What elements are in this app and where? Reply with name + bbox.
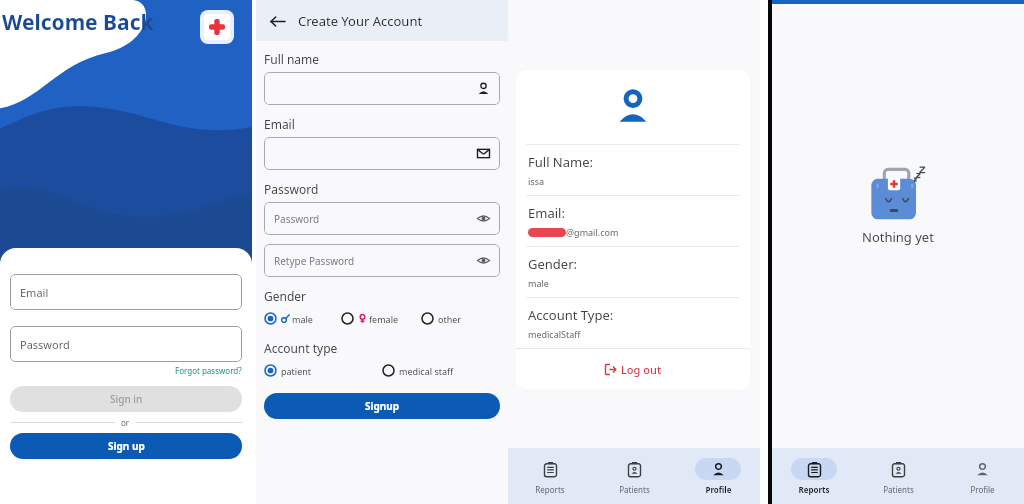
other: Reports	[807, 462, 822, 477]
other: Show password	[477, 212, 490, 225]
staticText: @gmail.com	[566, 226, 619, 238]
button[interactable]: Name	[264, 72, 500, 105]
button[interactable]: Email	[10, 274, 242, 310]
button[interactable]: Email	[264, 137, 500, 170]
staticText: male	[292, 313, 313, 325]
other: Email	[477, 147, 490, 160]
staticText: Gender	[264, 288, 307, 304]
button[interactable]: male	[264, 310, 313, 327]
button[interactable]: Signup	[264, 393, 500, 419]
staticText: Gender:	[528, 255, 578, 273]
other: Reports	[543, 462, 558, 477]
staticText: or	[121, 417, 130, 428]
staticText: Patients	[619, 484, 650, 495]
staticText: issa	[528, 175, 544, 187]
other: Patients	[891, 462, 906, 477]
staticText: Password	[274, 212, 477, 226]
staticText: Welcome Back	[2, 8, 154, 37]
other: Patients	[627, 462, 642, 477]
staticText: Sign in	[110, 392, 143, 406]
other: Profile	[711, 462, 726, 477]
staticText: Email:	[528, 204, 565, 222]
button[interactable]: patient	[264, 362, 312, 379]
staticText: Nothing yet	[862, 228, 934, 246]
staticText: Retype Password	[274, 254, 477, 268]
button[interactable]: Sign in	[10, 386, 242, 412]
staticText: Full Name:	[528, 153, 594, 171]
button[interactable]: Password	[264, 202, 500, 235]
button[interactable]: Patients	[592, 448, 676, 504]
staticText: Sign up	[108, 439, 145, 453]
button[interactable]: App logo	[200, 10, 234, 44]
button[interactable]: Reports	[508, 448, 592, 504]
button[interactable]: female	[341, 310, 399, 327]
button[interactable]: Sign up	[10, 433, 242, 459]
staticText: Profile	[705, 484, 732, 495]
button[interactable]: Patients	[856, 448, 940, 504]
staticText: Account type	[264, 340, 338, 356]
staticText: Log out	[621, 362, 662, 377]
staticText: Patients	[883, 484, 914, 495]
other: Profile	[975, 462, 990, 477]
button[interactable]: Password	[10, 326, 242, 362]
button[interactable]: Profile	[676, 448, 760, 504]
staticText: male	[528, 277, 549, 289]
other: Show password	[477, 254, 490, 267]
button[interactable]: Back	[264, 8, 290, 34]
button[interactable]: medical staff	[382, 362, 454, 379]
staticText: Password	[264, 181, 319, 197]
button[interactable]: Profile	[940, 448, 1024, 504]
staticText: medical staff	[399, 365, 454, 377]
staticText: medicalStaff	[528, 328, 581, 340]
button[interactable]: Forgot password?	[175, 365, 242, 376]
button[interactable]: Log out	[516, 349, 750, 389]
staticText: Full name	[264, 51, 320, 67]
staticText: Profile	[970, 484, 995, 495]
staticText: female	[369, 313, 399, 325]
staticText: Account Type:	[528, 306, 614, 324]
staticText: other	[438, 313, 462, 325]
staticText: Email	[264, 116, 295, 132]
staticText: Email	[20, 285, 49, 300]
other: Name	[477, 82, 490, 95]
button[interactable]: Reports	[772, 448, 856, 504]
staticText: patient	[281, 365, 312, 377]
staticText: Password	[20, 337, 70, 352]
button[interactable]: other	[421, 310, 462, 327]
staticText: Reports	[798, 484, 830, 495]
staticText: Signup	[365, 399, 400, 413]
staticText: Create Your Account	[298, 12, 423, 30]
button[interactable]: Retype Password	[264, 244, 500, 277]
staticText: Reports	[535, 484, 565, 495]
